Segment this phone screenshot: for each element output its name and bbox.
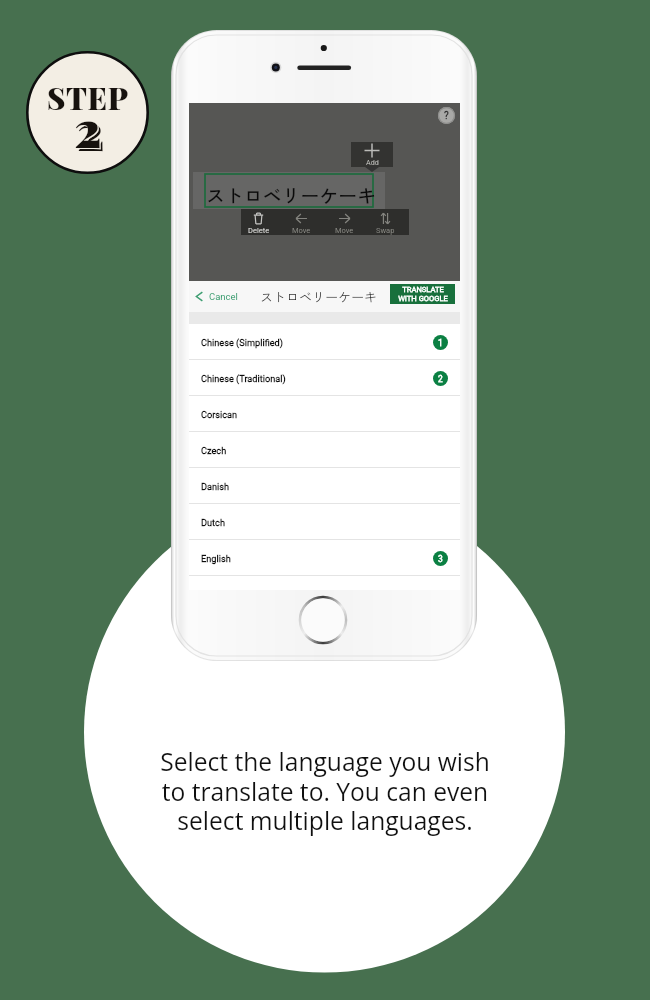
staticText: Cancel	[209, 291, 238, 302]
button[interactable]: TRANSLATE WITH GOOGLE	[390, 284, 455, 304]
staticText: English	[201, 553, 231, 564]
staticText: 2	[75, 95, 103, 162]
staticText: Delete	[248, 226, 270, 235]
button[interactable]: Chinese (Simplified)	[189, 324, 460, 360]
staticText: STEP	[47, 78, 129, 118]
staticText: ストロベリーケーキ	[260, 287, 378, 306]
button[interactable]: Home	[299, 596, 347, 644]
button[interactable]: Corsican	[189, 396, 460, 432]
staticText: 1	[438, 338, 443, 348]
staticText: Move	[292, 226, 311, 235]
staticText: Add	[366, 158, 379, 166]
staticText: 2	[77, 97, 105, 164]
staticText: Chinese (Simplified)	[201, 337, 283, 348]
button[interactable]: Move	[280, 209, 323, 235]
staticText: ?	[444, 110, 449, 122]
staticText: Move	[335, 226, 354, 235]
staticText: Chinese (Traditional)	[201, 373, 286, 384]
staticText: Corsican	[201, 409, 238, 420]
button[interactable]: English	[189, 540, 460, 576]
button[interactable]: Chinese (Traditional)	[189, 360, 460, 396]
button[interactable]: Add	[351, 142, 393, 167]
button[interactable]: Danish	[189, 468, 460, 504]
button[interactable]: Dutch	[189, 504, 460, 540]
staticText: 3	[438, 554, 443, 564]
staticText: Danish	[201, 481, 230, 492]
button[interactable]: Step 2	[26, 51, 149, 174]
staticText: Dutch	[201, 517, 225, 528]
button[interactable]: Move	[323, 209, 366, 235]
staticText: TRANSLATE WITH GOOGLE	[398, 285, 448, 303]
button[interactable]: Swap	[366, 209, 405, 235]
button[interactable]	[205, 174, 373, 207]
button[interactable]: Czech	[189, 432, 460, 468]
button[interactable]: Delete	[237, 209, 280, 235]
staticText: Swap	[376, 226, 395, 235]
staticText: Czech	[201, 445, 227, 456]
staticText: 2	[74, 94, 102, 161]
button[interactable]: Cancel	[193, 281, 235, 311]
button[interactable]: Help	[438, 107, 455, 124]
staticText: Select the language you wish to translat…	[0, 745, 650, 837]
staticText: 2	[438, 374, 443, 384]
staticText: ストロベリーケーキ	[206, 181, 377, 208]
